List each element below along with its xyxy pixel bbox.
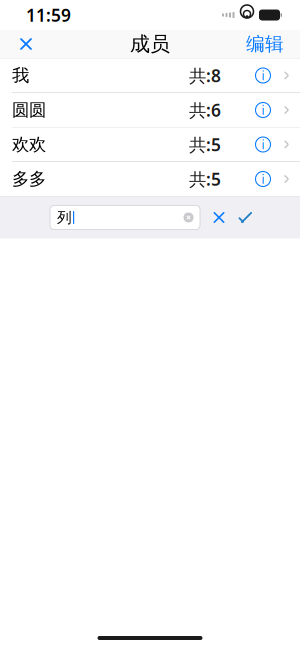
- staticText: 多多: [12, 168, 46, 190]
- staticText: 我: [12, 65, 29, 86]
- button[interactable]: 确认: [234, 205, 256, 229]
- button[interactable]: 我: [0, 58, 300, 92]
- staticText: i: [261, 102, 264, 118]
- staticText: i: [261, 67, 264, 83]
- staticText: i: [261, 136, 264, 152]
- staticText: i: [261, 171, 264, 187]
- button[interactable]: 多多: [0, 162, 300, 196]
- button[interactable]: 编辑: [236, 30, 294, 58]
- button[interactable]: 欢欢: [0, 127, 300, 161]
- staticText: 11:59: [26, 3, 71, 26]
- staticText: 欢欢: [12, 134, 46, 155]
- staticText: 圆圆: [12, 99, 46, 121]
- staticText: 共:5: [189, 133, 221, 156]
- button[interactable]: 圆圆: [0, 93, 300, 127]
- staticText: 共:5: [189, 167, 221, 190]
- button[interactable]: 取消: [208, 205, 230, 229]
- staticText: 共:6: [189, 98, 221, 121]
- staticText: 编辑: [246, 32, 284, 55]
- staticText: 共:8: [189, 64, 221, 87]
- button[interactable]: 关闭: [6, 30, 46, 58]
- staticText: 成员: [130, 32, 170, 56]
- staticText: 列: [57, 208, 72, 226]
